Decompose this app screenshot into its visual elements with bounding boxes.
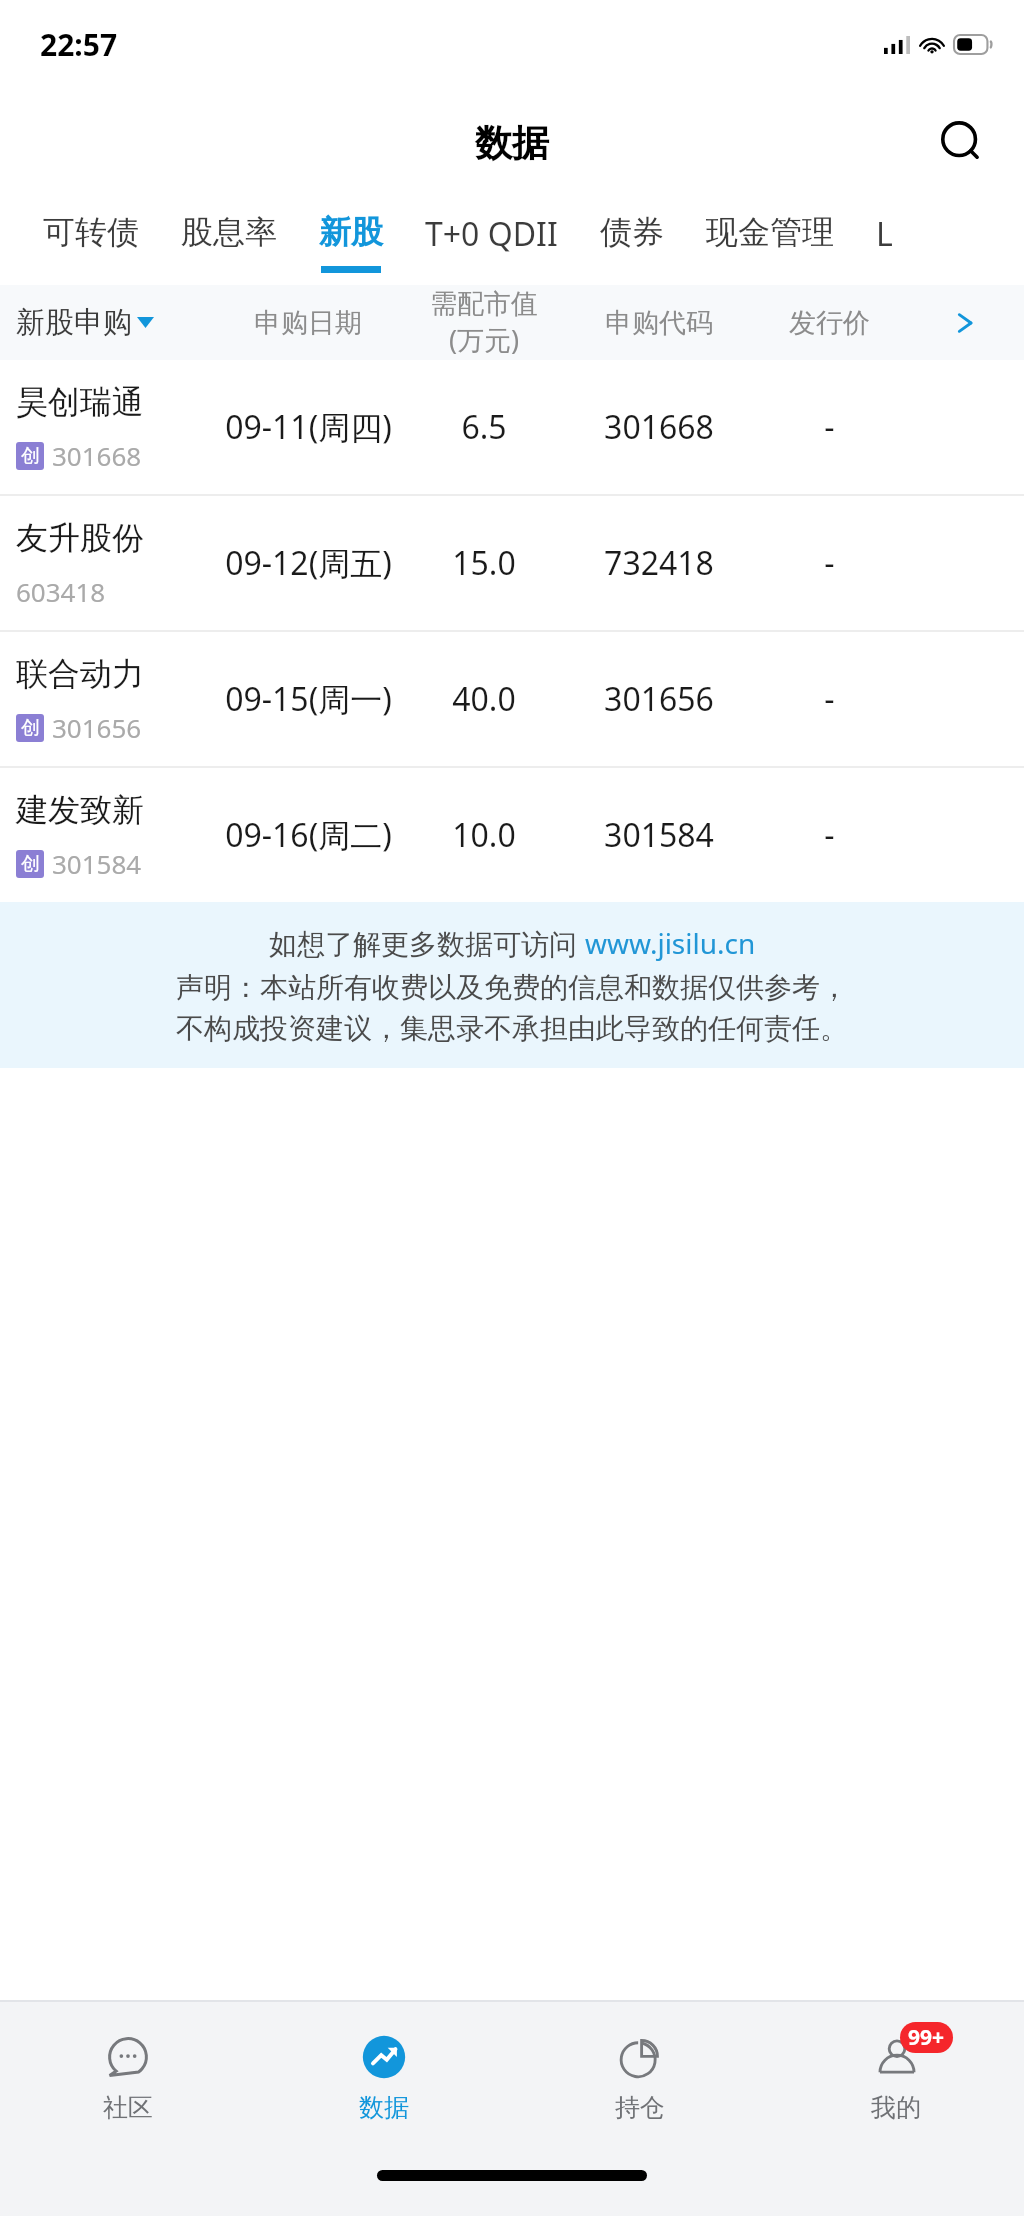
button[interactable]: 新股	[319, 198, 383, 273]
staticText: 15.0	[452, 541, 516, 585]
staticText: 股息率	[181, 212, 277, 252]
staticText: 发行价	[789, 306, 870, 340]
staticText: 持仓	[615, 2092, 665, 2123]
button[interactable]: 建发致新	[0, 768, 1024, 902]
button[interactable]: 联合动力	[0, 632, 1024, 766]
staticText: 603418	[16, 574, 106, 609]
button[interactable]: 数据	[256, 2002, 512, 2152]
staticText: 10.0	[452, 813, 516, 857]
staticText: 现金管理	[706, 212, 834, 252]
staticText: 友升股份	[16, 518, 144, 558]
staticText: 建发致新	[16, 790, 144, 830]
staticText: (万元)	[449, 321, 520, 358]
staticText: 732418	[604, 541, 714, 585]
button[interactable]: 现金管理	[706, 198, 834, 266]
staticText: 301656	[52, 710, 142, 745]
button[interactable]: 99+	[768, 2002, 1024, 2152]
button[interactable]: 友升股份	[0, 496, 1024, 630]
staticText: 我的	[871, 2092, 921, 2123]
staticText: 数据	[359, 2092, 409, 2123]
staticText: 新股申购	[16, 304, 132, 341]
staticText: 可转债	[43, 212, 139, 252]
staticText: 40.0	[452, 677, 516, 721]
staticText: 创	[21, 444, 40, 468]
button[interactable]: 新股申购	[0, 285, 1024, 360]
staticText: 声明：本站所有收费以及免费的信息和数据仅供参考，	[176, 970, 848, 1005]
staticText: 09-16(周二)	[225, 813, 392, 857]
staticText: 需配市值	[430, 287, 538, 321]
staticText: 09-11(周四)	[225, 405, 392, 449]
staticText: -	[824, 541, 835, 585]
staticText: 创	[21, 852, 40, 876]
staticText: -	[824, 813, 835, 857]
staticText: 22:57	[40, 24, 118, 65]
button[interactable]: T+0 QDII	[425, 198, 558, 270]
button[interactable]: 股息率	[181, 198, 277, 266]
staticText: 申购日期	[254, 306, 362, 340]
staticText: L	[876, 212, 893, 256]
staticText: 301668	[52, 438, 142, 473]
staticText: 301584	[604, 813, 714, 857]
staticText: 社区	[103, 2092, 153, 2123]
staticText: www.jisilu.cn	[585, 924, 756, 962]
staticText: 新股	[319, 212, 383, 252]
staticText: 数据	[475, 120, 549, 167]
staticText: 6.5	[461, 405, 507, 449]
staticText: 昊创瑞通	[16, 382, 144, 422]
staticText: 99+	[908, 2023, 945, 2052]
button[interactable]: 债券	[600, 198, 664, 266]
staticText: 不构成投资建议，集思录不承担由此导致的任何责任。	[176, 1011, 848, 1046]
staticText: 301668	[604, 405, 714, 449]
staticText: 09-12(周五)	[225, 541, 392, 585]
button[interactable]: 昊创瑞通	[0, 360, 1024, 494]
staticText: 如想了解更多数据可访问	[269, 924, 585, 962]
staticText: 09-15(周一)	[225, 677, 392, 721]
staticText: 301656	[604, 677, 714, 721]
button[interactable]: 可转债	[43, 198, 139, 266]
staticText: 债券	[600, 212, 664, 252]
staticText: 申购代码	[605, 306, 713, 340]
button[interactable]: L	[876, 198, 893, 270]
staticText: 301584	[52, 846, 142, 881]
staticText: T+0 QDII	[425, 212, 558, 256]
button[interactable]: More columns	[904, 285, 1024, 360]
staticText: 创	[21, 716, 40, 740]
staticText: -	[824, 677, 835, 721]
button[interactable]: 社区	[0, 2002, 256, 2152]
button[interactable]: www.jisilu.cn	[585, 924, 756, 962]
staticText: 联合动力	[16, 654, 144, 694]
button[interactable]: Search	[926, 107, 998, 179]
button[interactable]: 持仓	[512, 2002, 768, 2152]
staticText: -	[824, 405, 835, 449]
